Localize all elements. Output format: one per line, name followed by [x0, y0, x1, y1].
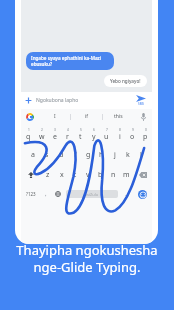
button[interactable]: d	[54, 145, 68, 165]
button[interactable]: Change language	[52, 185, 64, 203]
button[interactable]: v	[81, 165, 94, 185]
staticText: w	[39, 132, 45, 142]
button[interactable]: 9	[126, 124, 139, 145]
button[interactable]: Backspace	[133, 165, 152, 185]
button[interactable]: ,	[40, 185, 52, 203]
button[interactable]: b	[94, 165, 107, 185]
staticText: t	[79, 132, 82, 142]
button[interactable]: h	[95, 145, 108, 165]
button[interactable]: x	[55, 165, 68, 185]
button[interactable]: this	[103, 109, 134, 124]
staticText: if	[85, 113, 89, 120]
staticText: z	[46, 170, 50, 180]
staticText: f	[74, 150, 77, 160]
staticText: Ngokubona lapho	[36, 97, 130, 104]
staticText: 3	[54, 128, 56, 132]
staticText: p	[143, 132, 148, 142]
button[interactable]: c	[68, 165, 81, 185]
staticText: j	[114, 150, 116, 160]
staticText: g	[86, 150, 91, 160]
staticText: .	[125, 190, 127, 198]
button[interactable]: z	[41, 165, 55, 185]
button[interactable]: 1	[21, 124, 35, 145]
staticText: ?123	[26, 191, 36, 197]
staticText: 9	[132, 128, 134, 132]
staticText: isiZulu	[86, 192, 99, 197]
button[interactable]: Space	[66, 190, 118, 198]
button[interactable]: 0	[139, 124, 152, 145]
staticText: q	[26, 132, 31, 142]
staticText: v	[86, 170, 90, 180]
button[interactable]: Emoji	[132, 185, 152, 203]
button[interactable]: Google	[21, 109, 39, 124]
button[interactable]: 6	[87, 124, 100, 145]
button[interactable]: 5	[74, 124, 87, 145]
button[interactable]: ?123	[21, 185, 40, 203]
button[interactable]: l	[134, 145, 147, 165]
staticText: k	[126, 150, 130, 160]
button[interactable]: 7	[100, 124, 113, 145]
button[interactable]: 8	[113, 124, 126, 145]
staticText: y	[92, 132, 96, 142]
staticText: ,	[45, 190, 47, 198]
button[interactable]: m	[120, 165, 133, 185]
staticText: r	[66, 132, 69, 142]
button[interactable]: Ingabe uyaya ephathini ka-Mazi ebusuku?	[26, 52, 114, 70]
staticText: u	[104, 132, 109, 142]
button[interactable]: Send SMS	[130, 92, 152, 109]
staticText: Thayipha ngokushesha nge-Glide Typing.	[16, 241, 158, 276]
button[interactable]: 3	[48, 124, 61, 145]
staticText: 4	[67, 128, 69, 132]
button[interactable]: I	[39, 109, 70, 124]
staticText: 8	[119, 128, 121, 132]
staticText: h	[99, 150, 104, 160]
button[interactable]: s	[40, 145, 54, 165]
staticText: e	[53, 132, 57, 142]
staticText: I	[54, 113, 56, 120]
staticText: 1	[28, 128, 30, 132]
button[interactable]: 2	[35, 124, 48, 145]
staticText: 5	[80, 128, 82, 132]
staticText: l	[140, 150, 142, 160]
staticText: c	[73, 170, 77, 180]
button[interactable]: Add attachment	[21, 92, 36, 109]
staticText: n	[111, 170, 116, 180]
staticText: Yebo ngiyayo!	[110, 78, 141, 84]
staticText: Ingabe uyaya ephathini ka-Mazi ebusuku?	[31, 55, 109, 67]
staticText: b	[98, 170, 103, 180]
staticText: SMS	[138, 102, 145, 106]
staticText: d	[59, 150, 64, 160]
button[interactable]: if	[71, 109, 102, 124]
staticText: a	[31, 150, 35, 160]
staticText: 2	[41, 128, 43, 132]
staticText: o	[130, 132, 135, 142]
button[interactable]: 4	[61, 124, 74, 145]
staticText: s	[45, 150, 49, 160]
button[interactable]: Add attachment	[21, 92, 152, 109]
staticText: m	[123, 170, 130, 180]
button[interactable]: .	[120, 185, 132, 203]
button[interactable]: j	[108, 145, 121, 165]
button[interactable]: g	[82, 145, 95, 165]
staticText: x	[60, 170, 64, 180]
staticText: 7	[106, 128, 108, 132]
staticText: i	[119, 132, 121, 142]
button[interactable]: Voice input	[134, 109, 152, 124]
button[interactable]: Shift	[21, 165, 41, 185]
button[interactable]: a	[26, 145, 40, 165]
staticText: this	[114, 113, 123, 120]
button[interactable]: f	[68, 145, 82, 165]
button[interactable]: n	[107, 165, 120, 185]
button[interactable]: Yebo ngiyayo!	[104, 75, 147, 87]
staticText: 6	[93, 128, 95, 132]
staticText: 0	[145, 128, 147, 132]
button[interactable]: k	[121, 145, 134, 165]
